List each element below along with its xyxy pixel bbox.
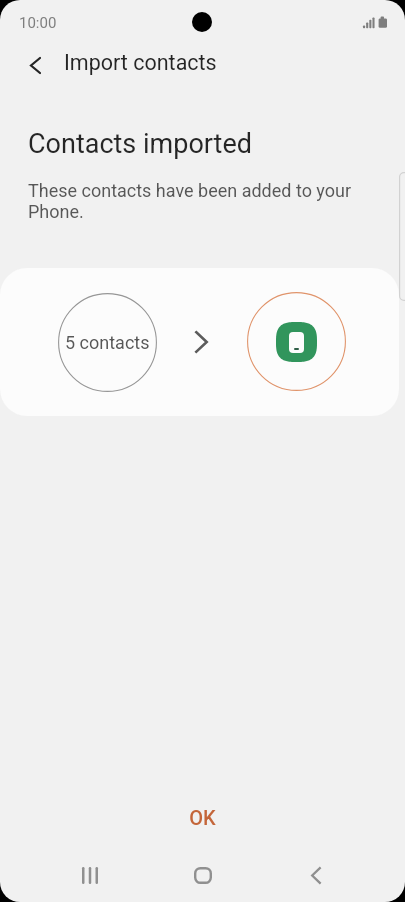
staticText: OK [189,806,216,829]
staticText: 10:00 [19,14,57,32]
staticText: Import contacts [64,50,217,75]
button[interactable]: Navigate up [13,43,57,87]
button[interactable]: OK [161,796,244,839]
staticText: These contacts have been added to your P… [28,180,358,222]
button[interactable]: Back [284,843,348,902]
button[interactable]: Recent apps [58,843,122,902]
button[interactable]: Home [171,843,235,902]
button[interactable]: 5 contacts [0,268,399,416]
staticText: 5 contacts [65,332,150,353]
staticText: Contacts imported [28,128,252,160]
